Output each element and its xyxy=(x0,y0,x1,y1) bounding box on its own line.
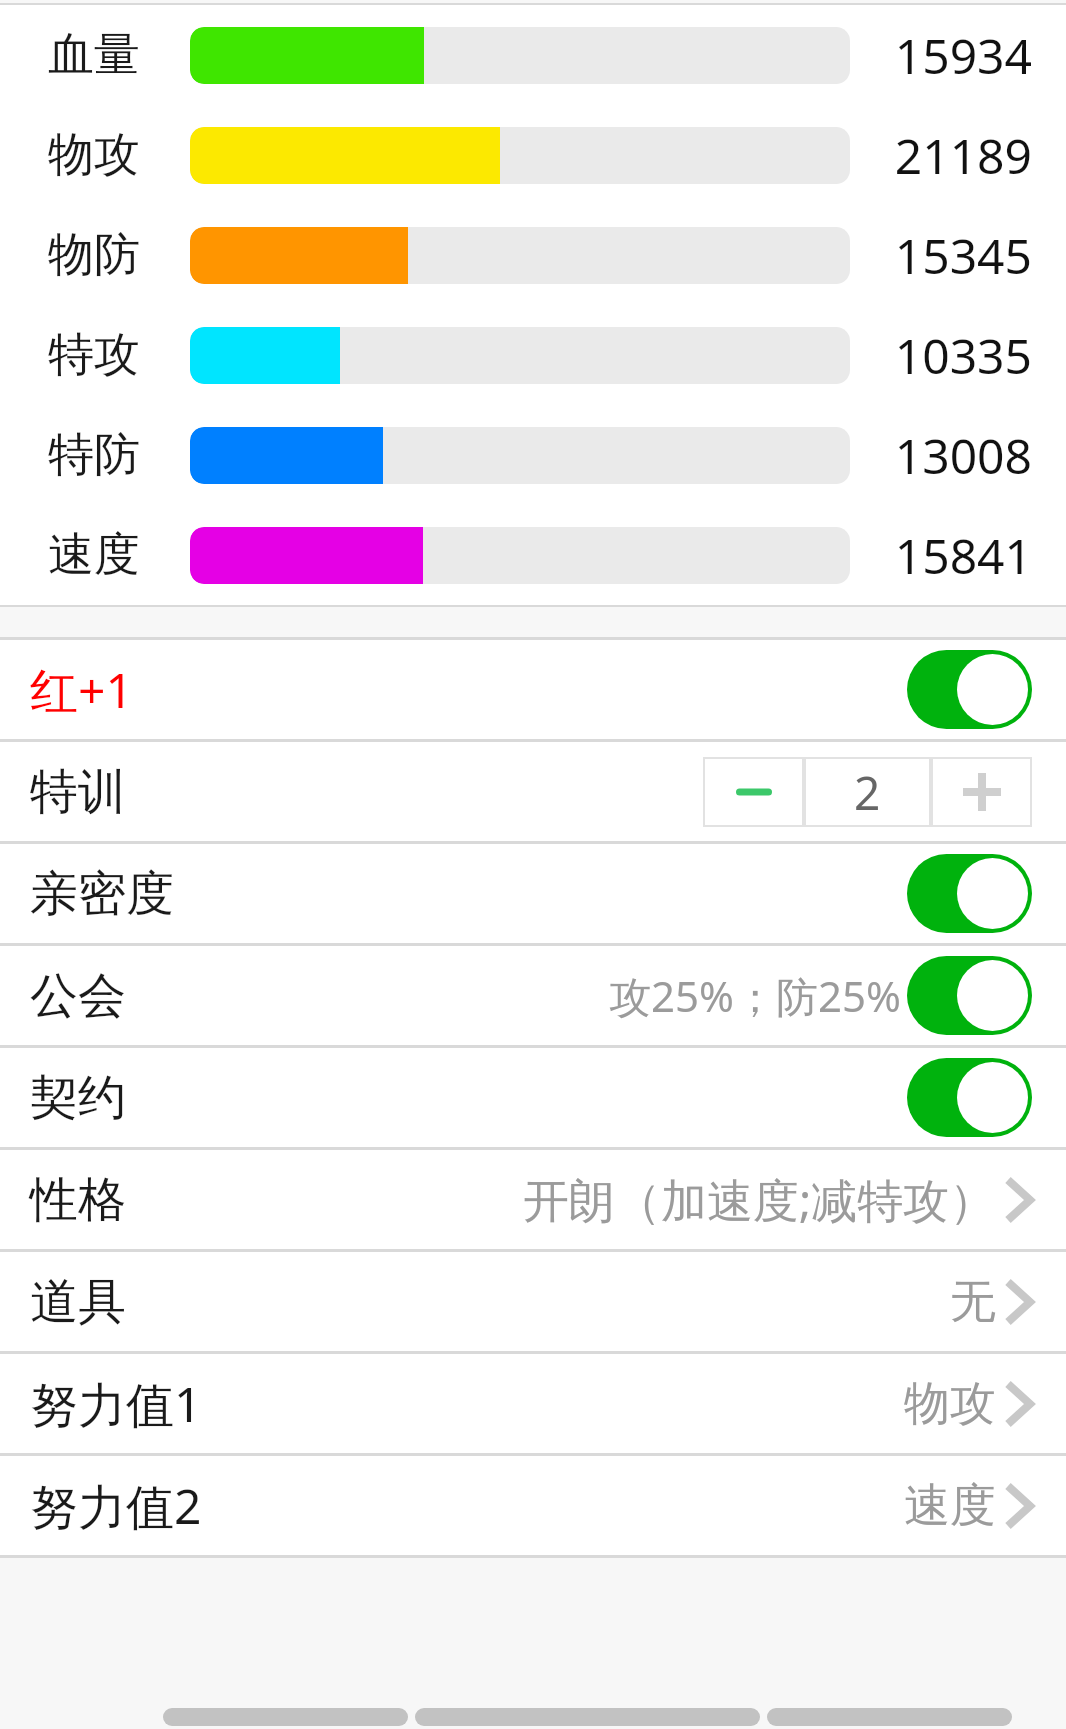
staticText: 努力值1 xyxy=(30,1371,202,1437)
staticText: 亲密度 xyxy=(30,864,174,924)
staticText: 15345 xyxy=(894,223,1032,288)
button[interactable]: Decrease xyxy=(703,757,804,827)
staticText: 努力值2 xyxy=(30,1473,202,1539)
button[interactable]: 红+1 xyxy=(0,640,1066,739)
staticText: 21189 xyxy=(894,123,1032,188)
button[interactable]: Toggle on xyxy=(907,1058,1032,1137)
staticText: 契约 xyxy=(30,1068,126,1128)
button[interactable]: 物攻 xyxy=(0,105,1066,205)
button[interactable]: 契约 xyxy=(0,1048,1066,1147)
button[interactable]: Toggle on xyxy=(907,650,1032,729)
button[interactable]: 努力值1 xyxy=(0,1354,1066,1453)
button[interactable]: 性格 xyxy=(0,1150,1066,1249)
staticText: 速度 xyxy=(904,1477,996,1535)
staticText: 开朗（加速度;减特攻） xyxy=(523,1168,996,1231)
staticText: 特训 xyxy=(30,762,126,822)
button[interactable]: 物防 xyxy=(0,205,1066,305)
staticText: 2 xyxy=(854,761,881,824)
staticText: 血量 xyxy=(48,26,140,84)
staticText: 无 xyxy=(950,1273,996,1331)
button[interactable]: 特训 xyxy=(0,742,1066,841)
button[interactable]: 特防 xyxy=(0,405,1066,505)
staticText: 攻25%；防25% xyxy=(609,967,901,1024)
staticText: 物攻 xyxy=(48,126,140,184)
staticText: 15841 xyxy=(894,523,1032,588)
button[interactable]: Increase xyxy=(931,757,1032,827)
button[interactable]: 努力值2 xyxy=(0,1456,1066,1555)
staticText: 物防 xyxy=(48,226,140,284)
staticText: 13008 xyxy=(894,423,1032,488)
staticText: 15934 xyxy=(894,23,1032,88)
button[interactable]: 亲密度 xyxy=(0,844,1066,943)
button[interactable]: 速度 xyxy=(0,505,1066,605)
button[interactable]: 2 xyxy=(804,757,931,827)
staticText: 红+1 xyxy=(30,657,133,723)
button[interactable]: Toggle on xyxy=(907,854,1032,933)
button[interactable]: 血量 xyxy=(0,5,1066,105)
button[interactable]: 公会 xyxy=(0,946,1066,1045)
button[interactable]: Toggle on xyxy=(907,956,1032,1035)
staticText: 性格 xyxy=(30,1170,126,1230)
staticText: 特防 xyxy=(48,426,140,484)
staticText: 速度 xyxy=(48,526,140,584)
staticText: 道具 xyxy=(30,1272,126,1332)
staticText: 公会 xyxy=(30,966,126,1026)
staticText: 特攻 xyxy=(48,326,140,384)
button[interactable]: 道具 xyxy=(0,1252,1066,1351)
button[interactable]: 特攻 xyxy=(0,305,1066,405)
staticText: 物攻 xyxy=(904,1375,996,1433)
staticText: 10335 xyxy=(894,323,1032,388)
